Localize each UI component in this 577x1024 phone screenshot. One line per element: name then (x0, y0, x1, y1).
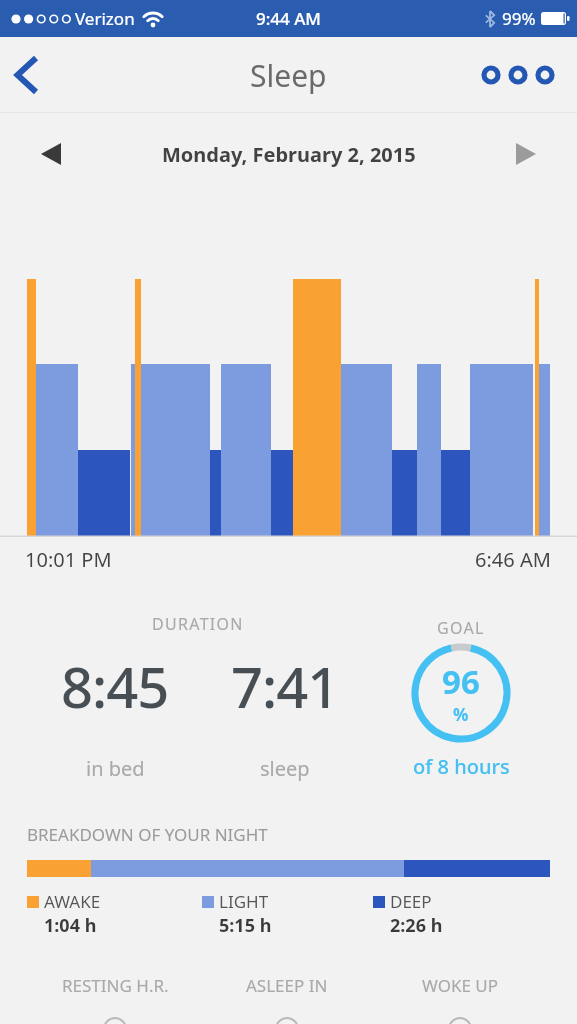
staticText: 2:26 h (390, 913, 443, 938)
staticText: GOAL (437, 617, 485, 639)
staticText: Sleep (250, 55, 327, 96)
staticText: Monday, February 2, 2015 (162, 141, 416, 168)
staticText: WOKE UP (422, 974, 499, 997)
staticText: Verizon (75, 7, 135, 30)
staticText: DURATION (152, 613, 244, 635)
button[interactable] (479, 55, 565, 95)
staticText: LIGHT (219, 890, 269, 913)
staticText: 1:04 h (44, 913, 97, 938)
staticText: AWAKE (44, 890, 101, 913)
staticText: 5:15 h (219, 913, 272, 938)
button[interactable] (505, 133, 547, 175)
staticText: RESTING H.R. (62, 974, 169, 997)
staticText: 6:46 AM (475, 546, 551, 573)
staticText: sleep (260, 755, 310, 782)
staticText: 96 (442, 659, 480, 704)
staticText: 10:01 PM (25, 546, 112, 573)
staticText: 8:45 (61, 648, 169, 724)
staticText: 9:44 AM (256, 7, 321, 30)
button[interactable] (6, 55, 46, 95)
staticText: 7:41 (231, 648, 339, 724)
staticText: 99% (502, 7, 536, 30)
staticText: BREAKDOWN OF YOUR NIGHT (27, 823, 268, 846)
staticText: in bed (86, 755, 145, 782)
button[interactable]: 96 (411, 643, 511, 743)
staticText: of 8 hours (413, 753, 510, 780)
staticText: % (453, 703, 469, 726)
staticText: DEEP (390, 890, 432, 913)
staticText: ASLEEP IN (246, 974, 328, 997)
button[interactable] (30, 133, 72, 175)
